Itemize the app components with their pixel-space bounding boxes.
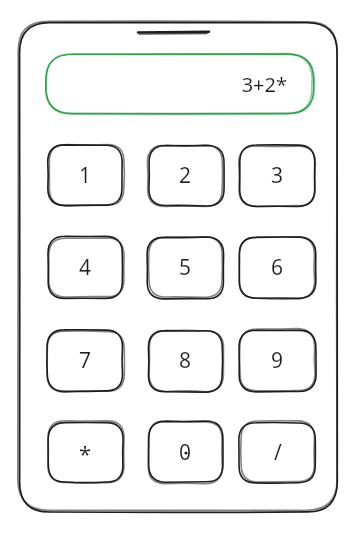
button[interactable]: Divide [240, 422, 315, 483]
staticText: 1 [79, 161, 92, 190]
staticText: * [79, 438, 92, 468]
button[interactable]: Digit 5 [148, 237, 223, 298]
button[interactable]: Digit 6 [240, 237, 315, 298]
staticText: 5 [179, 253, 192, 282]
button[interactable]: Multiply [48, 422, 123, 483]
staticText: / [274, 438, 282, 467]
staticText: 4 [79, 253, 92, 282]
staticText: 3 [271, 161, 284, 190]
staticText: 2 [179, 161, 192, 190]
button[interactable]: Digit 0 [148, 422, 223, 483]
button[interactable]: Digit 8 [148, 330, 223, 391]
button[interactable]: Digit 2 [148, 145, 223, 206]
staticText: 3+2* [241, 71, 287, 98]
staticText: 8 [179, 346, 192, 375]
staticText: 9 [271, 346, 284, 375]
button[interactable]: Digit 1 [48, 145, 123, 206]
staticText: 6 [271, 253, 284, 282]
button[interactable]: Digit 9 [240, 330, 315, 391]
button[interactable]: Digit 3 [240, 145, 315, 206]
staticText: 0 [179, 438, 192, 467]
staticText: 7 [79, 346, 92, 375]
button[interactable]: 3+2* [46, 55, 313, 113]
button[interactable]: Digit 4 [48, 237, 123, 298]
button[interactable]: Digit 7 [48, 330, 123, 391]
